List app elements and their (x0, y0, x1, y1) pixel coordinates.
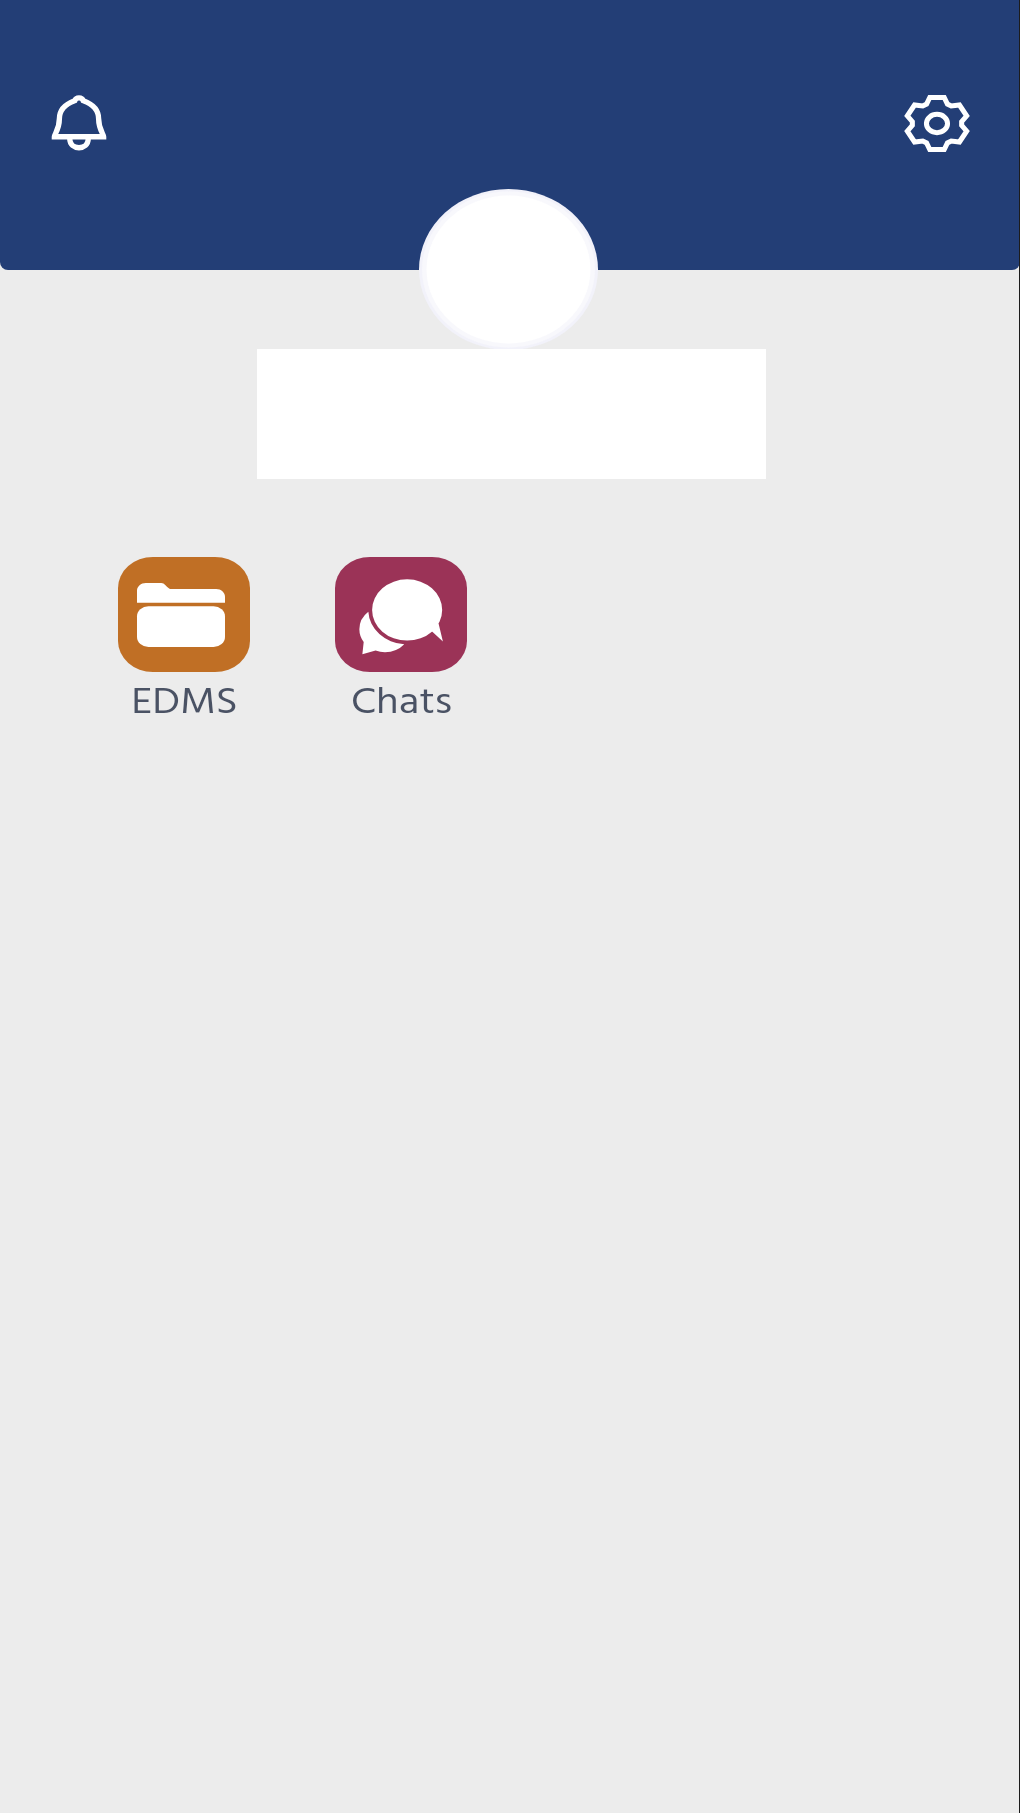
button[interactable]: Settings (898, 84, 976, 162)
staticText: EDMS (131, 674, 238, 732)
button[interactable]: EDMS (118, 557, 250, 732)
button[interactable]: Profile photo (419, 189, 598, 350)
button[interactable]: Chats (335, 557, 467, 732)
staticText: Chats (350, 674, 453, 732)
button[interactable]: Notifications (40, 84, 118, 162)
